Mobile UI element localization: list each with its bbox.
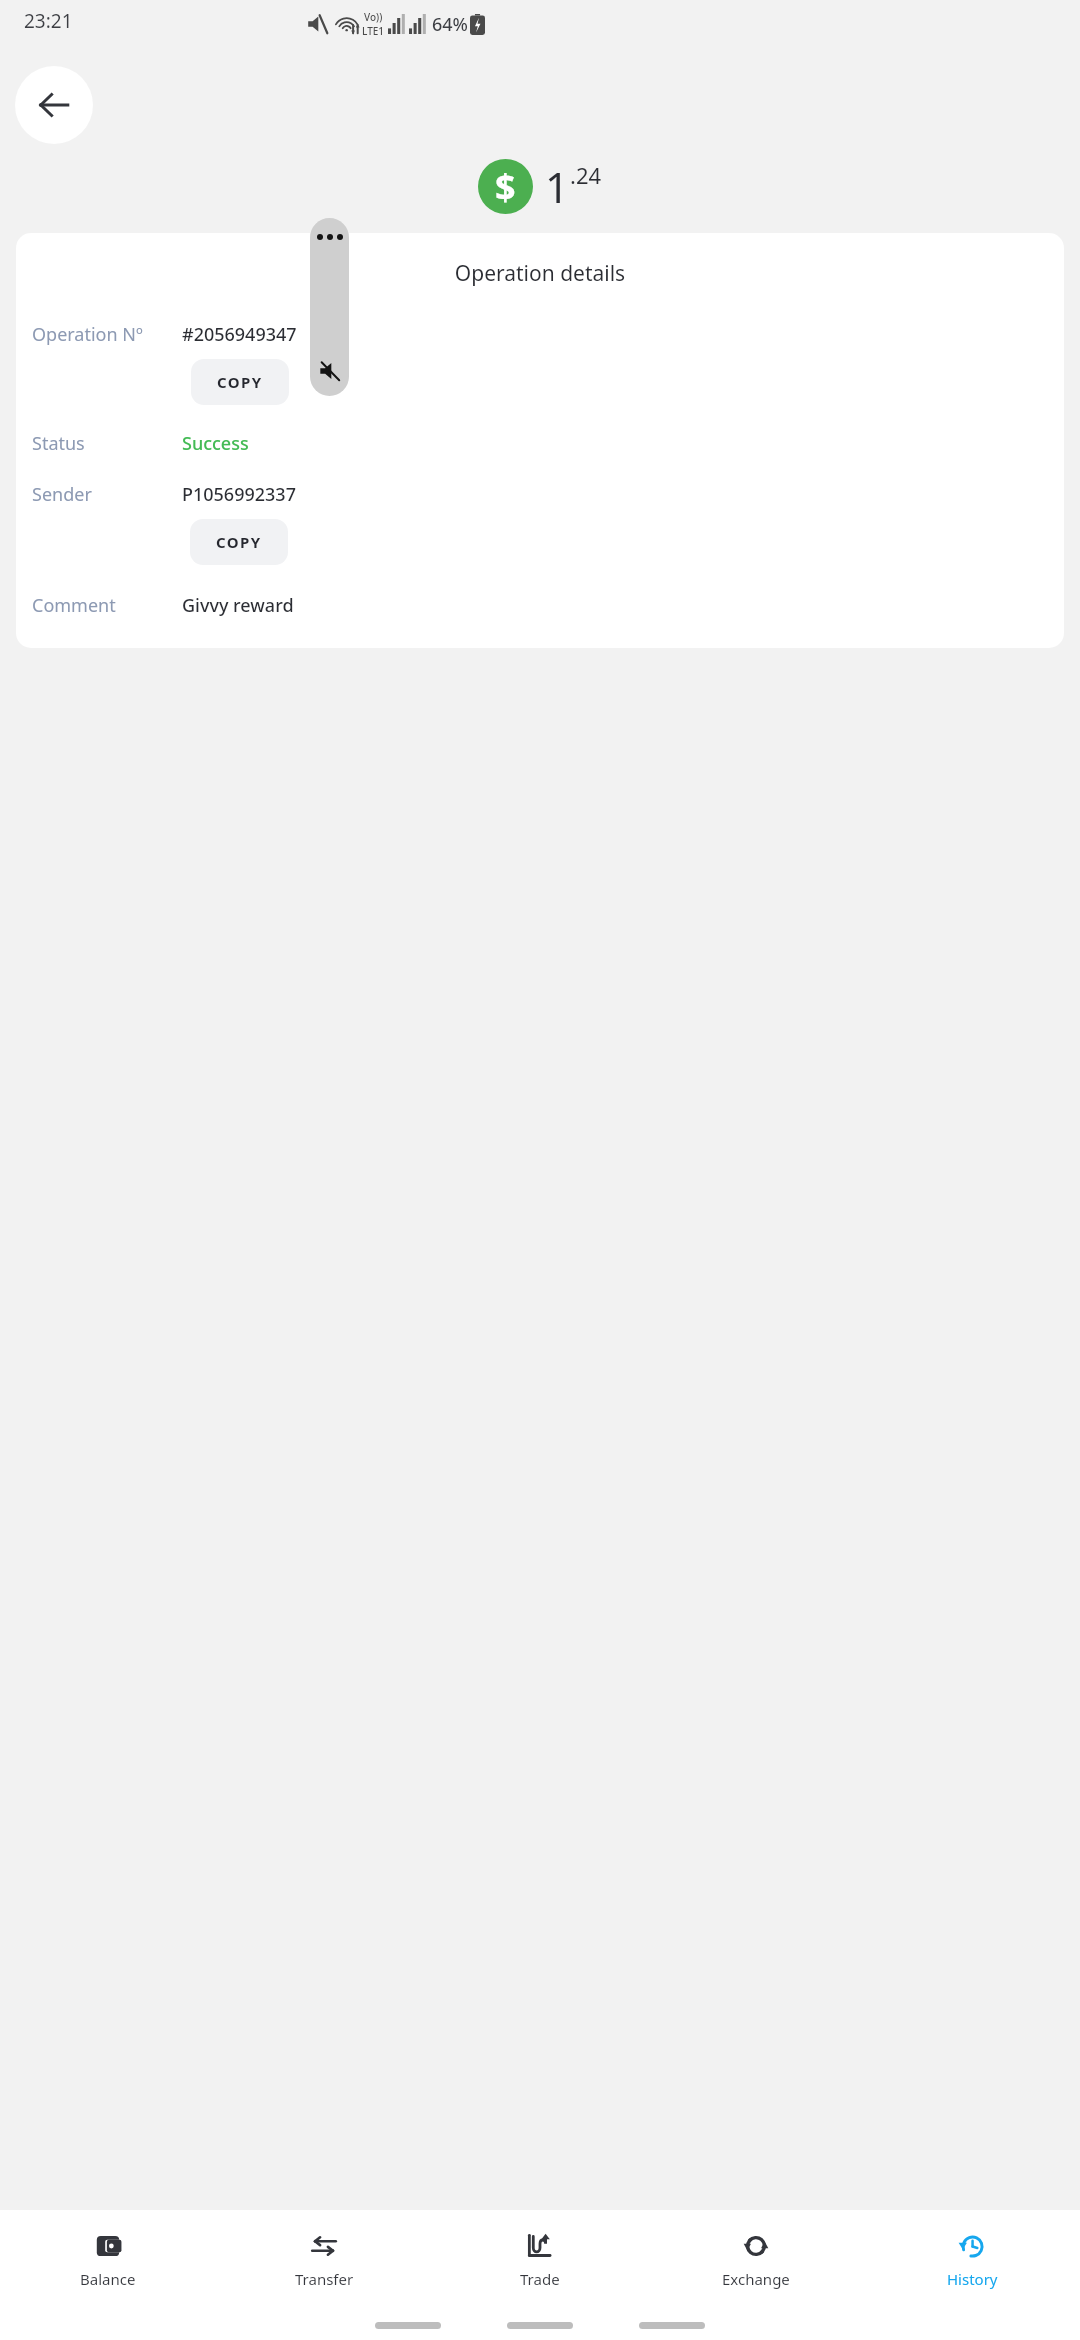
staticText: Comment [32, 593, 116, 618]
staticText: $ [495, 162, 516, 211]
button[interactable]: Exchange [648, 2210, 864, 2310]
staticText: 1 [545, 158, 570, 215]
button[interactable]: Volume controls [310, 218, 349, 396]
staticText: Exchange [722, 2269, 790, 2289]
staticText: Balance [80, 2269, 136, 2289]
staticText: P1056992337 [182, 482, 296, 507]
staticText: COPY [217, 372, 263, 392]
button[interactable]: Back [15, 66, 93, 144]
button[interactable]: COPY [191, 359, 289, 405]
staticText: Operation details [16, 259, 1064, 288]
staticText: #2056949347 [182, 322, 297, 347]
staticText: Operation Nº [32, 322, 143, 347]
staticText: .24 [570, 160, 602, 190]
staticText: Trade [520, 2269, 560, 2289]
staticText: Success [182, 431, 249, 456]
button[interactable]: COPY [190, 519, 288, 565]
button[interactable]: Balance [0, 2210, 216, 2310]
staticText: COPY [216, 532, 262, 552]
staticText: Status [32, 431, 85, 456]
button[interactable]: Transfer [216, 2210, 432, 2310]
staticText: History [947, 2269, 998, 2289]
staticText: Vo)) [364, 10, 383, 24]
staticText: Givvy reward [182, 593, 294, 618]
staticText: 64% [432, 12, 468, 37]
staticText: Sender [32, 482, 92, 507]
staticText: 23:21 [24, 8, 73, 34]
button[interactable]: History [864, 2210, 1080, 2310]
button[interactable]: Trade [432, 2210, 648, 2310]
staticText: Transfer [295, 2269, 354, 2289]
staticText: LTE1 [362, 24, 385, 38]
